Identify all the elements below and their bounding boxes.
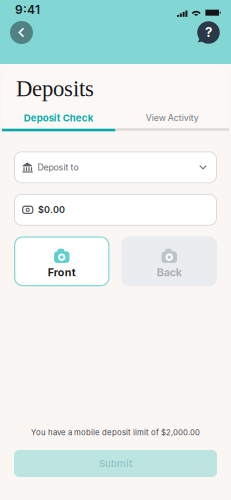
staticText: Deposit Check — [24, 112, 94, 124]
staticText: Back — [157, 266, 182, 279]
staticText: Submit — [99, 458, 132, 469]
staticText: Deposits — [16, 76, 94, 101]
staticText: Deposit to — [37, 162, 78, 173]
staticText: Front — [48, 266, 76, 279]
staticText: 9:41 — [15, 2, 40, 17]
button[interactable]: Back — [8, 19, 35, 46]
button[interactable]: Deposit to — [14, 151, 217, 183]
button[interactable]: Back — [121, 236, 217, 286]
staticText: ? — [205, 24, 212, 40]
staticText: You have a mobile deposit limit of $2,00… — [31, 428, 200, 437]
button[interactable]: View Activity — [115, 113, 229, 131]
staticText: View Activity — [146, 113, 199, 123]
button[interactable]: Front — [14, 236, 109, 286]
button[interactable]: Deposit Check — [2, 112, 115, 131]
button[interactable]: $0.00 — [14, 194, 217, 226]
button[interactable]: Help — [195, 19, 222, 46]
button[interactable]: Submit — [14, 450, 217, 477]
staticText: $0.00 — [38, 204, 65, 215]
